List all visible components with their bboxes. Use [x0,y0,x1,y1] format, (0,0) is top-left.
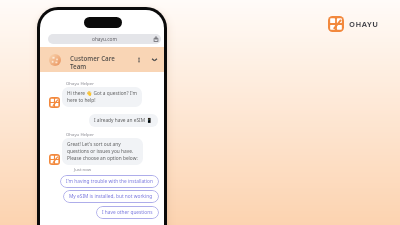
button[interactable]: Collapse [150,55,159,64]
button[interactable]: Share [153,36,159,42]
button[interactable]: My eSIM is installed, but not working [63,190,159,203]
staticText: I already have an eSIM 📱 [94,117,153,124]
staticText: I'm having trouble with the installation [66,178,153,185]
staticText: Team [70,62,87,70]
staticText: My eSIM is installed, but not working [69,193,153,200]
staticText: Customer Care [70,54,115,62]
staticText: I have other questions [102,209,153,216]
staticText: Ohayu Helper [66,80,94,86]
staticText: Hi there 👋 Got a question? I'm here to h… [67,90,137,104]
button[interactable]: More options [135,56,143,64]
staticText: Just now [74,166,92,172]
staticText: Ohayu Helper [66,131,94,137]
button[interactable]: I have other questions [96,206,159,219]
button[interactable]: I'm having trouble with the installation [60,175,159,188]
staticText: OHAYU [349,19,379,29]
staticText: ohayu.com [92,36,117,43]
staticText: Great! Let's sort out any questions or i… [67,141,138,162]
button[interactable]: Customer Care [40,47,164,72]
button[interactable]: OHAYU [328,16,379,32]
